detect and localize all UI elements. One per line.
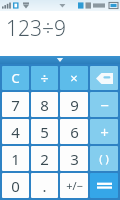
staticText: 7 bbox=[11, 95, 20, 115]
staticText: 3 bbox=[70, 149, 79, 169]
button[interactable]: 7 bbox=[2, 92, 29, 117]
staticText: C bbox=[11, 69, 20, 87]
staticText: 1 bbox=[11, 149, 20, 169]
button[interactable]: +/− bbox=[60, 173, 88, 198]
staticText: 5 bbox=[40, 122, 49, 142]
staticText: × bbox=[70, 69, 78, 87]
staticText: 8 bbox=[40, 95, 49, 115]
staticText: 123÷9 bbox=[6, 14, 66, 43]
staticText: − bbox=[100, 95, 109, 115]
button[interactable]: Backspace bbox=[90, 66, 118, 90]
staticText: ÷ bbox=[40, 69, 49, 88]
button[interactable]: ÷ bbox=[31, 66, 58, 90]
staticText: 6 bbox=[70, 122, 79, 142]
staticText: 0 bbox=[11, 176, 20, 196]
button[interactable]: . bbox=[31, 173, 58, 198]
button[interactable]: Collapse keypad bbox=[0, 56, 120, 64]
button[interactable]: 0 bbox=[2, 173, 29, 198]
button[interactable]: 9 bbox=[60, 92, 88, 117]
staticText: 2 bbox=[40, 149, 49, 169]
button[interactable]: 4 bbox=[2, 119, 29, 144]
button[interactable]: − bbox=[90, 92, 118, 117]
staticText: + bbox=[100, 122, 109, 142]
staticText: 9 bbox=[70, 95, 79, 115]
staticText: 4 bbox=[11, 122, 20, 142]
staticText: . bbox=[42, 176, 47, 196]
button[interactable]: 3 bbox=[60, 146, 88, 171]
button[interactable]: × bbox=[60, 66, 88, 90]
staticText: +/− bbox=[66, 178, 83, 193]
button[interactable]: Equals bbox=[90, 173, 118, 198]
button[interactable]: C bbox=[2, 66, 29, 90]
button[interactable]: 5 bbox=[31, 119, 58, 144]
staticText: ( ) bbox=[99, 151, 109, 166]
button[interactable]: 6 bbox=[60, 119, 88, 144]
button[interactable]: 2 bbox=[31, 146, 58, 171]
button[interactable]: 123÷9 bbox=[0, 11, 120, 56]
button[interactable]: 1 bbox=[2, 146, 29, 171]
button[interactable]: 8 bbox=[31, 92, 58, 117]
button[interactable]: ( ) bbox=[90, 146, 118, 171]
button[interactable]: + bbox=[90, 119, 118, 144]
